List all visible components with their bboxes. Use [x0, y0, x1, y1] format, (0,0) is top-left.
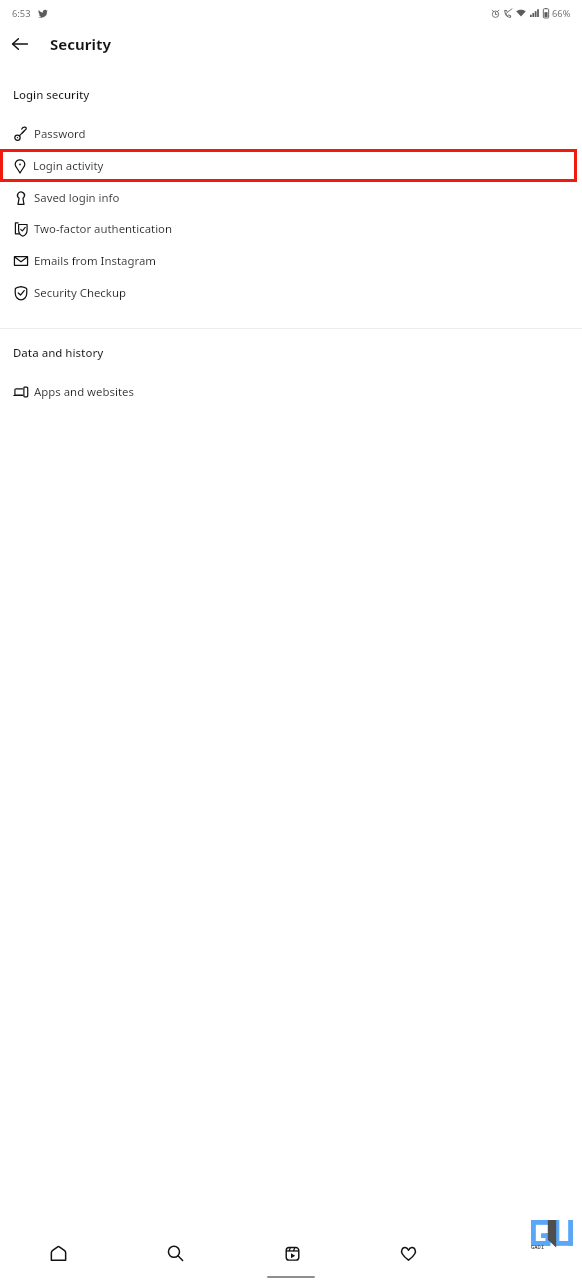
staticText: Login activity	[33, 158, 104, 174]
button[interactable]: Login activity	[3, 152, 574, 179]
staticText: Login security	[13, 87, 90, 103]
staticText: GADI	[531, 1243, 545, 1250]
staticText: Security Checkup	[34, 285, 126, 301]
button[interactable]: Security Checkup	[0, 277, 582, 309]
button[interactable]: Back	[5, 29, 35, 59]
button[interactable]: Two-factor authentication	[0, 213, 582, 245]
staticText: Saved login info	[34, 190, 120, 206]
staticText: Two-factor authentication	[34, 221, 172, 237]
staticText: Data and history	[13, 345, 104, 361]
button[interactable]: Home	[0, 1233, 117, 1273]
button[interactable]: Reels	[234, 1233, 350, 1273]
staticText: 66%	[552, 7, 571, 20]
staticText: Apps and websites	[34, 384, 134, 400]
button[interactable]: Activity	[350, 1233, 466, 1273]
button[interactable]: Search	[117, 1233, 234, 1273]
button[interactable]: Password	[0, 119, 582, 149]
button[interactable]: Emails from Instagram	[0, 245, 582, 277]
staticText: 6:53	[12, 7, 31, 20]
staticText: Security	[50, 34, 111, 54]
button[interactable]: Saved login info	[0, 182, 582, 213]
button[interactable]: Profile	[466, 1233, 582, 1273]
staticText: Password	[34, 126, 86, 142]
staticText: Emails from Instagram	[34, 253, 156, 269]
button[interactable]: Apps and websites	[0, 376, 582, 408]
